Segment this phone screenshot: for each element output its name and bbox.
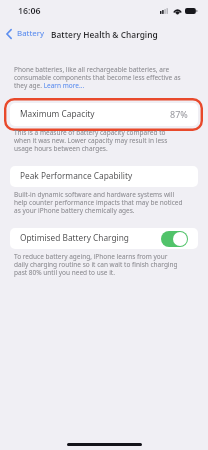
staticText: Battery Health & Charging [51, 29, 158, 40]
staticText: Optimised Battery Charging [20, 232, 129, 243]
staticText: Battery [17, 28, 44, 39]
staticText: This is a measure of battery capacity co… [14, 128, 183, 153]
button[interactable]: Peak Performance Capability [10, 166, 198, 187]
staticText: Built-in dynamic software and hardware s… [14, 190, 183, 215]
button[interactable]: Maximum Capacity [10, 103, 198, 126]
staticText: 87% [170, 108, 188, 120]
button[interactable]: Battery [4, 26, 44, 41]
staticText: To reduce battery ageing, iPhone learns … [14, 252, 183, 277]
staticText: Peak Performance Capability [20, 170, 133, 181]
button[interactable]: Optimised Battery Charging [161, 231, 188, 247]
button[interactable]: Optimised Battery Charging [10, 228, 198, 249]
staticText: Maximum Capacity [20, 108, 95, 119]
staticText: 16:06 [18, 5, 41, 17]
staticText: Phone batteries, like all rechargeable b… [14, 65, 183, 90]
